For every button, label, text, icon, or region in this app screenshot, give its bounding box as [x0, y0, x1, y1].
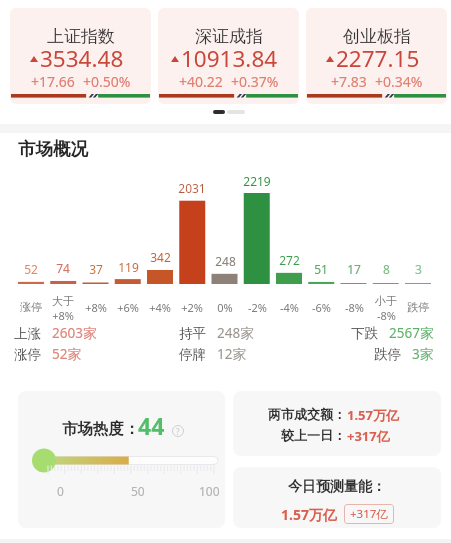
staticText: 8 [383, 261, 390, 277]
staticText: 52家 [52, 345, 81, 363]
staticText: +7.83 [331, 72, 367, 91]
staticText: 248家 [217, 324, 254, 342]
staticText: +0.34% [375, 72, 423, 91]
staticText: 大于 [52, 294, 74, 308]
staticText: 1.57万亿 [281, 505, 337, 524]
staticText: 2031 [178, 180, 206, 196]
staticText: 248 [215, 253, 236, 269]
staticText: 今日预测量能： [288, 478, 386, 496]
button[interactable]: 上证指数 [10, 8, 151, 104]
button[interactable] [227, 110, 245, 114]
staticText: 44 [138, 410, 165, 441]
button[interactable]: 创业板指 [306, 8, 447, 104]
button[interactable] [213, 110, 225, 114]
staticText: 10913.84 [181, 43, 278, 74]
staticText: 3 [415, 261, 422, 277]
staticText: 小于 [375, 294, 397, 308]
staticText: +17.66 [31, 72, 75, 91]
staticText: 跌停 [374, 346, 401, 363]
button[interactable]: 今日预测量能： [233, 467, 441, 528]
staticText: -8% [345, 300, 364, 315]
staticText: +2% [181, 300, 203, 315]
staticText: +8% [85, 300, 107, 315]
staticText: 272 [279, 252, 300, 268]
staticText: 市场热度： [62, 419, 140, 439]
staticText: +8% [52, 308, 74, 323]
staticText: -6% [312, 300, 331, 315]
staticText: +40.22 [179, 72, 223, 91]
staticText: 2603家 [52, 324, 97, 342]
staticText: 51 [314, 261, 328, 277]
staticText: 3家 [412, 345, 434, 363]
staticText: -2% [248, 300, 267, 315]
staticText: 上证指数 [47, 26, 115, 47]
staticText: +6% [117, 300, 139, 315]
staticText: +0.50% [83, 72, 131, 91]
staticText: +317亿 [347, 427, 390, 445]
staticText: 较上一日： [233, 427, 346, 443]
staticText: 342 [150, 249, 171, 265]
staticText: 3534.48 [40, 43, 124, 74]
staticText: 停牌 [179, 346, 206, 363]
button[interactable]: 深证成指 [158, 8, 299, 104]
staticText: 50 [131, 483, 145, 499]
staticText: ? [176, 426, 180, 437]
staticText: 创业板指 [343, 26, 411, 47]
button[interactable]: 说明 [172, 425, 184, 437]
staticText: +0.37% [231, 72, 279, 91]
staticText: 深证成指 [195, 26, 263, 47]
staticText: 持平 [179, 325, 206, 342]
staticText: 上涨 [14, 325, 41, 342]
staticText: +4% [149, 300, 171, 315]
staticText: 涨停 [20, 300, 42, 314]
staticText: 2277.15 [336, 43, 420, 74]
staticText: -8% [377, 308, 396, 323]
staticText: 下跌 [351, 325, 378, 342]
staticText: 37 [89, 261, 103, 277]
staticText: 52 [24, 261, 38, 277]
staticText: 0% [217, 300, 233, 315]
staticText: 119 [118, 259, 139, 275]
staticText: 涨停 [14, 346, 41, 363]
staticText: 1.57万亿 [347, 406, 399, 424]
staticText: +317亿 [350, 506, 388, 522]
staticText: 100 [199, 483, 220, 499]
staticText: 0 [57, 483, 64, 499]
staticText: 市场概况 [18, 138, 88, 160]
staticText: 2219 [243, 173, 271, 189]
staticText: 跌停 [407, 300, 429, 314]
staticText: 两市成交额： [233, 406, 346, 422]
button[interactable]: 两市成交额： [233, 391, 441, 456]
staticText: 17 [347, 261, 361, 277]
staticText: 12家 [217, 345, 246, 363]
button[interactable]: 市场热度： [18, 391, 225, 528]
staticText: 2567家 [389, 324, 434, 342]
staticText: 74 [56, 260, 70, 276]
staticText: -4% [280, 300, 299, 315]
